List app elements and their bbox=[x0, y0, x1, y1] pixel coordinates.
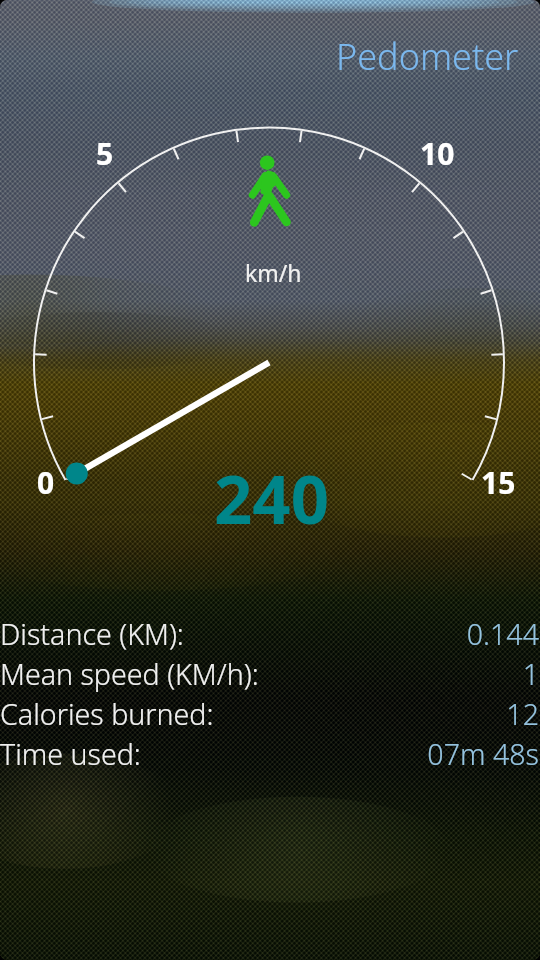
staticText: Pedometer bbox=[336, 32, 519, 81]
staticText: km/h bbox=[245, 257, 302, 288]
staticText: 10 bbox=[420, 133, 455, 174]
button[interactable]: Distance (KM): bbox=[0, 613, 540, 653]
staticText: Time used: bbox=[0, 734, 141, 773]
staticText: 0.144 bbox=[466, 614, 539, 653]
staticText: Distance (KM): bbox=[0, 614, 184, 653]
staticText: 12 bbox=[506, 694, 539, 733]
staticText: 07m 48s bbox=[427, 734, 539, 773]
staticText: 240 bbox=[214, 452, 329, 543]
button[interactable]: Calories burned: bbox=[0, 693, 540, 733]
staticText: 1 bbox=[522, 654, 539, 693]
staticText: 0 bbox=[37, 462, 55, 503]
button[interactable]: Mean speed (KM/h): bbox=[0, 653, 540, 693]
staticText: 5 bbox=[96, 133, 114, 174]
other: Walking bbox=[246, 152, 296, 230]
button[interactable]: Time used: bbox=[0, 733, 540, 773]
staticText: 15 bbox=[481, 462, 516, 503]
staticText: Mean speed (KM/h): bbox=[0, 654, 259, 693]
staticText: Calories burned: bbox=[0, 694, 214, 733]
